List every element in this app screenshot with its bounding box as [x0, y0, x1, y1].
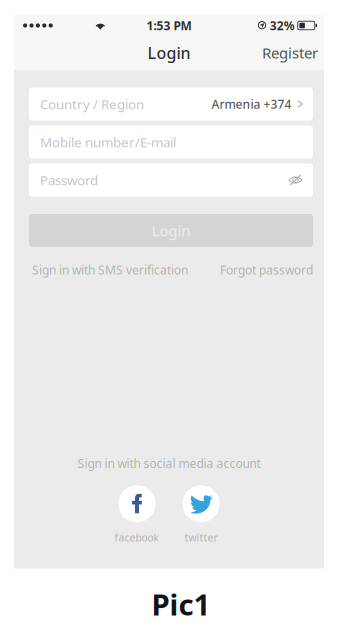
button[interactable]: Country / Region [29, 87, 313, 120]
staticText: Sign in with SMS verification [32, 262, 188, 278]
staticText: Register [262, 43, 318, 63]
button[interactable]: Sign in with SMS verification [32, 262, 188, 278]
button[interactable]: facebook [111, 485, 163, 544]
staticText: Country / Region [40, 95, 144, 113]
staticText: twitter [184, 530, 217, 544]
button[interactable]: Register [252, 37, 324, 69]
staticText: Forgot password [220, 262, 313, 278]
staticText: Password [40, 171, 98, 189]
button[interactable]: twitter [175, 485, 227, 544]
staticText: Login [151, 221, 190, 240]
button[interactable]: Forgot password [220, 262, 313, 278]
staticText: Sign in with social media account [77, 455, 260, 471]
staticText: 1:53 PM [146, 17, 191, 33]
staticText: Login [147, 42, 190, 63]
button[interactable]: Show password [288, 173, 303, 186]
staticText: Pic1 [151, 584, 210, 624]
staticText: Armenia +374 [211, 96, 291, 112]
staticText: facebook [114, 530, 159, 544]
staticText: Mobile number/E-mail [40, 133, 176, 151]
staticText: 32% [270, 17, 295, 33]
